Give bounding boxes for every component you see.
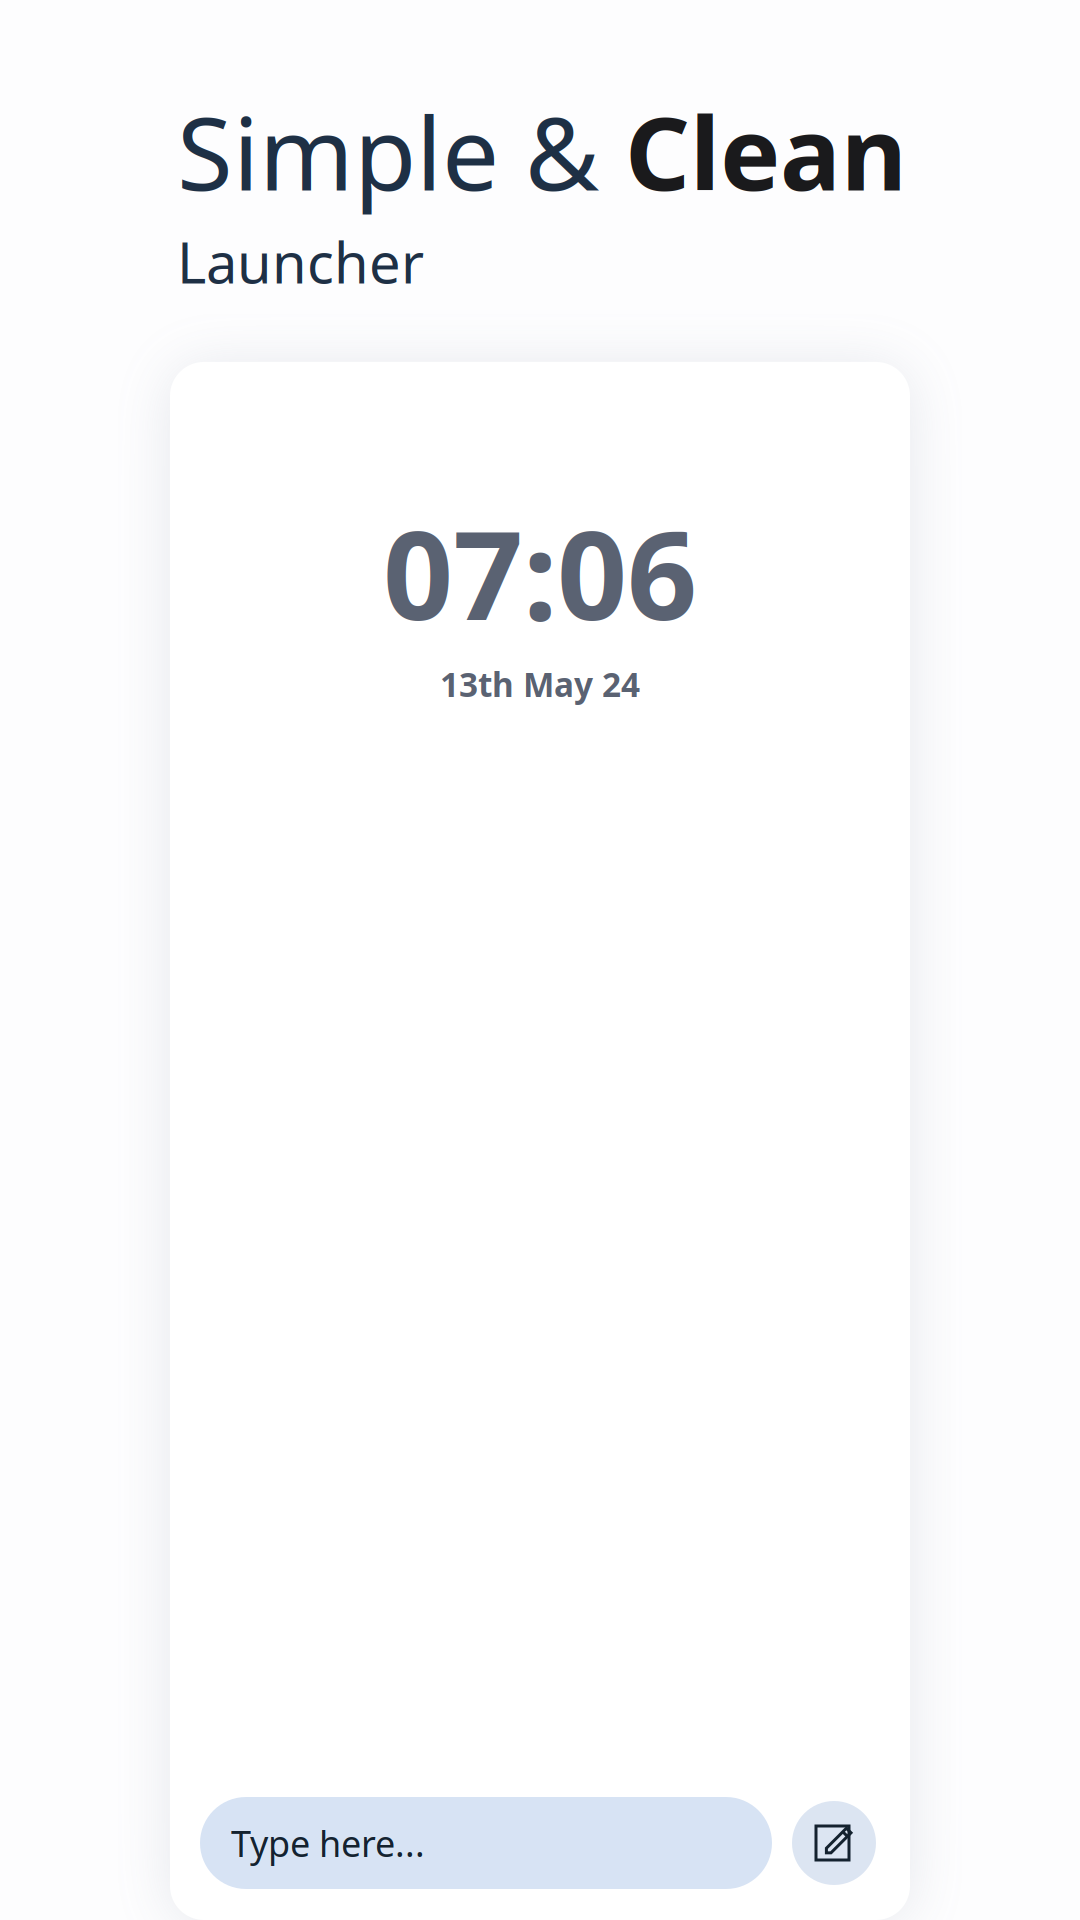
staticText: Launcher xyxy=(177,225,424,299)
staticText: Simple & xyxy=(177,84,625,219)
button[interactable]: Type here... xyxy=(200,1797,772,1889)
staticText: Type here... xyxy=(231,1819,425,1867)
staticText: 13th May 24 xyxy=(440,662,640,706)
staticText: Clean xyxy=(625,84,907,219)
button[interactable]: Compose xyxy=(792,1801,876,1885)
staticText: 07:06 xyxy=(383,491,697,654)
